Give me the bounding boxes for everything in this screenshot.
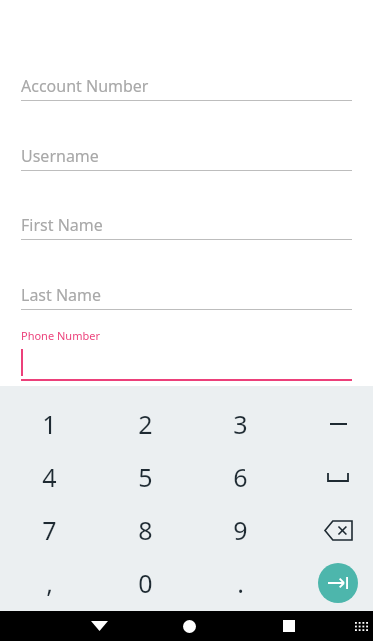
button[interactable]: 6 — [204, 451, 276, 503]
staticText: Account Number — [21, 75, 149, 97]
button[interactable]: Account Number — [21, 71, 352, 101]
button[interactable]: Space — [302, 451, 373, 503]
button[interactable]: Back — [82, 611, 116, 641]
staticText: 6 — [233, 460, 248, 494]
staticText: 3 — [233, 407, 248, 441]
staticText: 5 — [138, 460, 153, 494]
staticText: 8 — [138, 513, 153, 547]
button[interactable]: 3 — [204, 398, 276, 450]
staticText: Last Name — [21, 284, 102, 306]
button[interactable]: Phone Number — [21, 328, 352, 381]
button[interactable]: 8 — [109, 504, 181, 556]
staticText: 1 — [42, 407, 57, 441]
staticText: 2 — [138, 407, 153, 441]
staticText: Username — [21, 145, 99, 167]
button[interactable]: Next — [302, 557, 373, 609]
button[interactable]: 1 — [13, 398, 85, 450]
button[interactable]: Dash — [302, 398, 373, 450]
button[interactable]: 2 — [109, 398, 181, 450]
button[interactable]: 0 — [109, 557, 181, 609]
button[interactable]: . — [204, 557, 276, 609]
staticText: 9 — [233, 513, 248, 547]
button[interactable]: 9 — [204, 504, 276, 556]
button[interactable]: 4 — [13, 451, 85, 503]
button[interactable]: First Name — [21, 210, 352, 240]
staticText: Phone Number — [21, 328, 100, 343]
button[interactable]: 5 — [109, 451, 181, 503]
staticText: 0 — [138, 566, 153, 600]
staticText: First Name — [21, 214, 103, 236]
staticText: , — [46, 566, 53, 600]
staticText: . — [237, 566, 244, 600]
button[interactable]: Switch keyboard — [350, 611, 373, 641]
button[interactable]: Recent apps — [272, 611, 306, 641]
button[interactable]: Home — [172, 611, 206, 641]
button[interactable]: 7 — [13, 504, 85, 556]
staticText: 7 — [42, 513, 57, 547]
button[interactable]: , — [13, 557, 85, 609]
button[interactable]: Last Name — [21, 280, 352, 310]
button[interactable]: Username — [21, 141, 352, 171]
button[interactable]: Backspace — [302, 504, 373, 556]
staticText: 4 — [42, 460, 57, 494]
